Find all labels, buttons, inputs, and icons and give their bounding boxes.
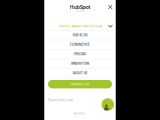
- staticText: © 2023: [74, 112, 86, 115]
- staticText: HubSpot: [69, 4, 90, 10]
- button[interactable]: CONTACT US: [48, 80, 112, 88]
- button[interactable]: Search this site: [48, 96, 112, 103]
- staticText: PRICING: [74, 52, 86, 56]
- button[interactable]: ABOUT US: [44, 69, 116, 78]
- button[interactable]: INNOVATION: [44, 59, 116, 69]
- staticText: Search this site: [48, 98, 73, 102]
- staticText: DIGITAL MARKETING SYSTEM: [58, 25, 101, 28]
- staticText: CONTACT US: [70, 83, 89, 86]
- button[interactable]: Close: [105, 2, 115, 12]
- staticText: ABOUT US: [72, 71, 87, 75]
- button[interactable]: PRICING: [44, 50, 116, 59]
- button[interactable]: DIGITAL MARKETING SYSTEM: [44, 22, 116, 31]
- button[interactable]: OUR BLOG: [44, 31, 116, 40]
- staticText: OUR BLOG: [72, 33, 87, 37]
- button[interactable]: Open chat: [101, 98, 114, 111]
- staticText: ECOMMERCE: [70, 43, 90, 46]
- staticText: INNOVATION: [71, 62, 89, 65]
- button[interactable]: ECOMMERCE: [44, 40, 116, 50]
